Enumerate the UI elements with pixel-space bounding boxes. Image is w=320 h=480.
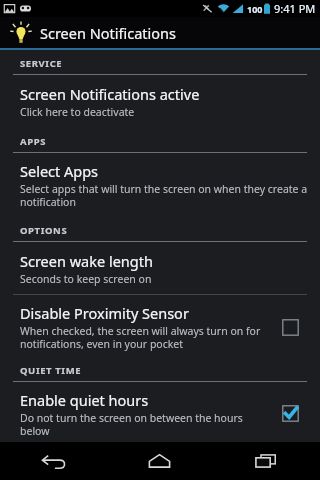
button[interactable]: Checked (280, 403, 300, 423)
button[interactable]: Disable Proximity Sensor (0, 295, 320, 357)
staticText: OPTIONS (20, 224, 68, 237)
staticText: 9:41 PM (274, 1, 316, 16)
staticText: Screen Notifications active (20, 84, 200, 104)
staticText: Enable quiet hours (20, 390, 149, 410)
button[interactable]: App icon (0, 17, 320, 48)
staticText: QUIET TIME (20, 364, 82, 377)
button[interactable]: Recent apps (213, 442, 320, 480)
other: App icon (8, 20, 34, 46)
button[interactable]: Unchecked (280, 317, 300, 337)
staticText: Select apps that will turn the screen on… (20, 182, 308, 209)
staticText: SERVICE (20, 57, 63, 70)
staticText: APPS (20, 135, 47, 148)
staticText: Seconds to keep screen on (20, 272, 152, 286)
button[interactable]: Home (106, 442, 213, 480)
staticText: When checked, the screen will always tur… (20, 324, 272, 351)
button[interactable]: Screen Notifications active (0, 75, 320, 128)
staticText: Select Apps (20, 161, 99, 181)
staticText: 100 (247, 3, 263, 15)
staticText: Do not turn the screen on between the ho… (20, 411, 272, 435)
staticText: Disable Proximity Sensor (20, 303, 189, 323)
button[interactable]: Enable quiet hours (0, 382, 320, 442)
button[interactable]: Back (0, 442, 106, 480)
button[interactable]: Select Apps (0, 153, 320, 217)
staticText: Screen Notifications (40, 23, 176, 43)
staticText: Click here to deactivate (20, 105, 135, 119)
button[interactable]: Screen wake length (0, 242, 320, 294)
staticText: Screen wake length (20, 251, 153, 271)
